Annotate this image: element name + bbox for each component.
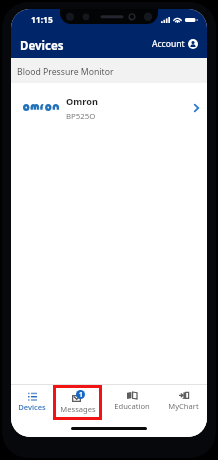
staticText: Omron [66, 95, 98, 108]
staticText: 11:15 [31, 14, 53, 26]
staticText: 1 [79, 390, 83, 399]
button[interactable]: MyChart [159, 385, 207, 420]
staticText: Messages [60, 404, 96, 414]
button[interactable]: Account [146, 34, 207, 54]
button[interactable]: Omron [11, 83, 207, 134]
staticText: Devices [20, 38, 64, 54]
other: Account [188, 39, 198, 49]
staticText: Devices [18, 402, 46, 412]
staticText: Account [152, 38, 185, 50]
button[interactable]: Education [107, 385, 156, 420]
staticText: Blood Pressure Monitor [17, 66, 114, 78]
staticText: Education [114, 401, 150, 411]
button[interactable]: Devices [11, 385, 56, 420]
staticText: MyChart [168, 401, 199, 411]
button[interactable]: 1 [53, 385, 102, 420]
staticText: BP525O [66, 111, 96, 122]
